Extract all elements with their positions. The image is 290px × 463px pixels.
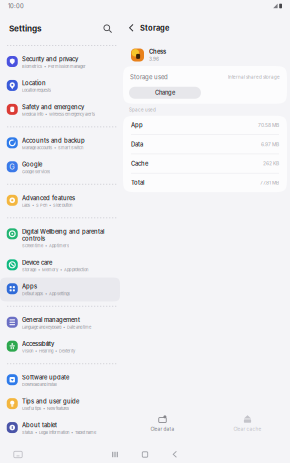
button[interactable]: Change (129, 87, 201, 99)
button[interactable]: Clear cache (205, 414, 290, 432)
staticText: 3.96 (149, 56, 159, 62)
staticText: Location (22, 80, 46, 87)
staticText: General management (22, 316, 80, 323)
staticText: Apps (22, 283, 37, 290)
staticText: Chess (149, 48, 166, 55)
button[interactable]: G (0, 156, 120, 179)
staticText: About tablet (22, 422, 57, 429)
button[interactable]: About tablet (0, 416, 120, 440)
button[interactable]: Accessibility (0, 335, 120, 359)
staticText: Google services (22, 169, 50, 174)
staticText: Clear data (150, 426, 174, 432)
staticText: Storage (140, 23, 169, 32)
button[interactable]: Back (125, 21, 138, 34)
button[interactable]: Recents (100, 447, 130, 462)
button[interactable]: Accounts and backup (0, 132, 120, 156)
staticText: Total (131, 179, 144, 186)
staticText: Accounts and backup (22, 137, 85, 144)
staticText: Labs • S Pen • Side button (22, 203, 72, 208)
staticText: G (9, 162, 15, 171)
staticText: Settings (9, 24, 42, 33)
staticText: Screen time • App timers (22, 243, 69, 248)
button[interactable]: Location (0, 74, 120, 98)
staticText: Change (155, 89, 175, 96)
button[interactable]: Search (101, 22, 114, 35)
button[interactable]: Security and privacy (0, 50, 120, 74)
staticText: Default apps • App settings (22, 291, 70, 296)
staticText: Cache (131, 160, 148, 167)
staticText: Status • Legal information • Tablet name (22, 430, 96, 435)
staticText: Biometrics • Permission manager (22, 64, 86, 69)
button[interactable]: Safety and emergency (0, 98, 120, 122)
staticText: Tips and user guide (22, 398, 79, 405)
button[interactable]: Advanced features (0, 189, 120, 213)
button[interactable]: Apps (0, 277, 120, 301)
staticText: App (131, 122, 143, 129)
button[interactable]: Device care (0, 254, 120, 277)
button[interactable]: Show keyboard (8, 447, 28, 462)
staticText: Download and install (22, 382, 57, 387)
staticText: Internal shared storage (228, 74, 280, 80)
button[interactable]: General management (0, 311, 120, 335)
staticText: Medical info • Wireless emergency alerts (22, 112, 95, 117)
staticText: Vision • Hearing • Dexterity (22, 349, 75, 353)
staticText: Location requests (22, 88, 51, 93)
button[interactable]: Tips and user guide (0, 392, 120, 416)
staticText: Security and privacy (22, 56, 78, 63)
staticText: Advanced features (22, 194, 75, 201)
staticText: 70.58 MB (258, 122, 279, 128)
staticText: Accessibility (22, 340, 54, 347)
button[interactable]: Digital Wellbeing and parental controls (0, 223, 120, 254)
staticText: Useful tips • New features (22, 406, 69, 411)
staticText: 262 KB (263, 160, 279, 166)
staticText: Storage used (130, 73, 168, 81)
button[interactable]: Home (130, 447, 160, 462)
staticText: Storage • Memory • App protection (22, 267, 88, 272)
button[interactable]: Clear data (120, 414, 205, 432)
staticText: Digital Wellbeing and parental controls (22, 228, 104, 242)
button[interactable]: Software update (0, 368, 120, 392)
staticText: 6.97 MB (261, 141, 279, 147)
staticText: Software update (22, 374, 69, 381)
staticText: Data (131, 141, 143, 148)
staticText: Language and keyboard • Date and time (22, 325, 91, 330)
staticText: Clear cache (233, 426, 261, 432)
button[interactable]: Back (160, 447, 190, 462)
staticText: 10:00 (8, 2, 24, 10)
staticText: Device care (22, 259, 52, 266)
staticText: Safety and emergency (22, 103, 84, 111)
staticText: Manage accounts • Smart Switch (22, 145, 83, 150)
staticText: Space used (129, 107, 156, 112)
staticText: 77.81 MB (260, 180, 279, 186)
staticText: Google (22, 161, 42, 168)
